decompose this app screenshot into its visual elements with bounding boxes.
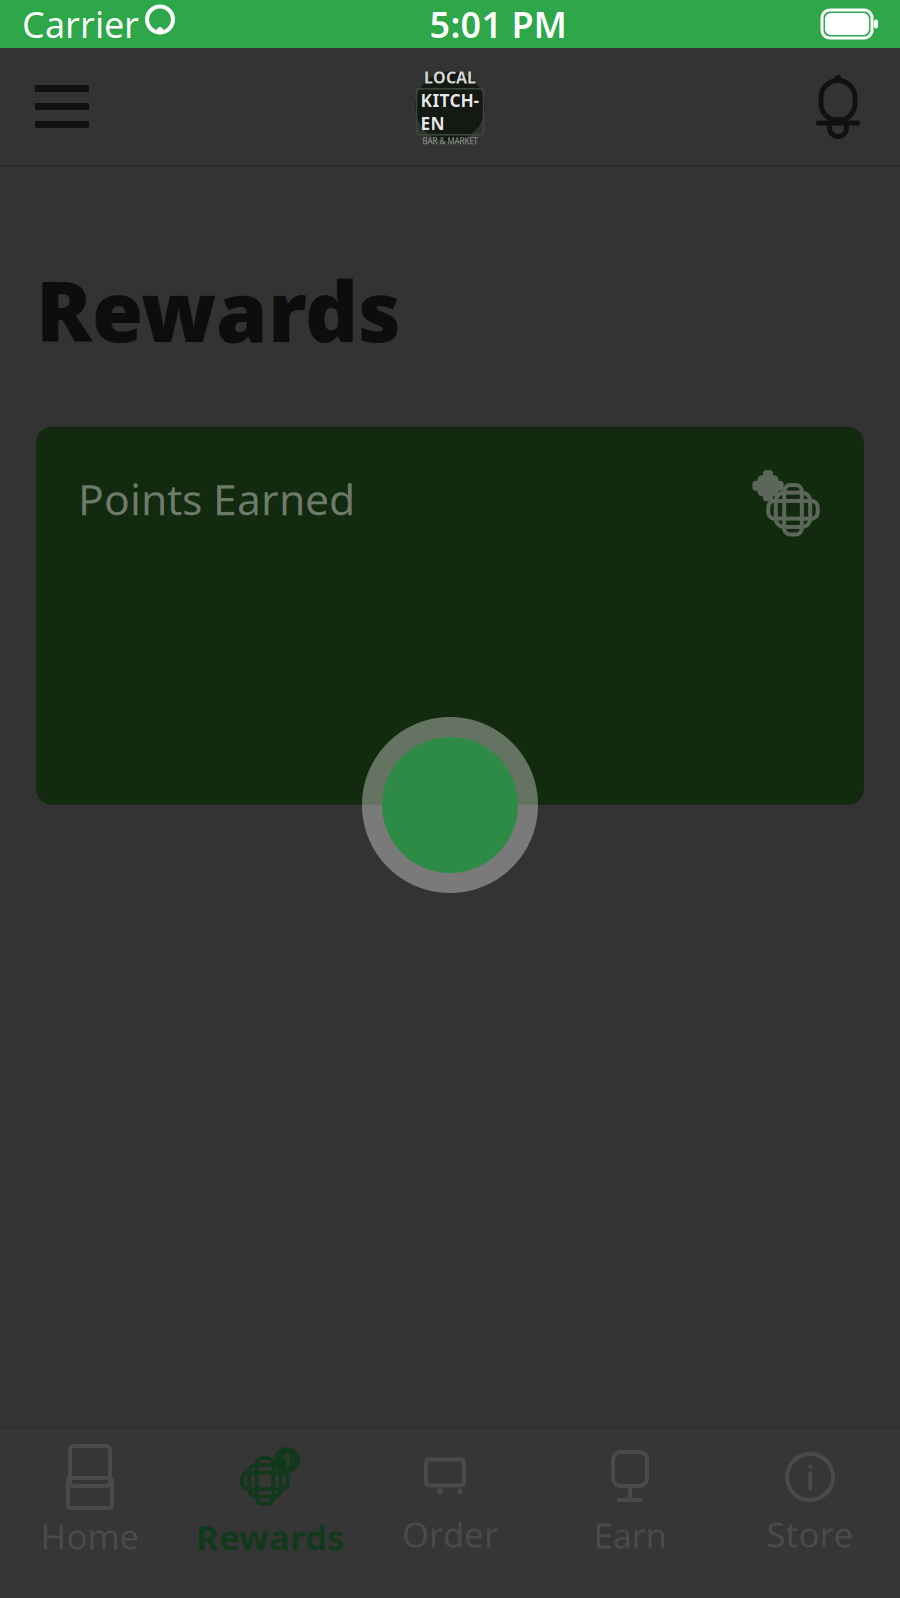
staticText: LOCAL [424, 66, 476, 88]
staticText: Rewards [36, 255, 401, 365]
button[interactable]: Local Kitchen home [395, 58, 505, 154]
staticText: 5:01 PM [429, 0, 566, 48]
staticText: Store [766, 1511, 853, 1557]
staticText: BAR & MARKET [422, 136, 477, 146]
staticText: Earn [593, 1512, 666, 1558]
button[interactable]: Notifications [790, 58, 886, 154]
staticText: i [805, 1454, 814, 1500]
staticText: Home [40, 1513, 139, 1559]
button[interactable]: 1 [180, 1429, 360, 1579]
staticText: Points Earned [78, 470, 355, 527]
staticText: 1 [281, 1448, 292, 1472]
button[interactable]: i [720, 1429, 900, 1579]
button[interactable]: Menu [14, 58, 110, 154]
button[interactable]: Earn [540, 1429, 720, 1579]
staticText: Carrier [22, 0, 139, 48]
button[interactable]: Home [0, 1429, 180, 1579]
staticText: Order [402, 1511, 498, 1557]
button[interactable]: Order [360, 1429, 540, 1579]
staticText: Rewards [196, 1514, 344, 1560]
staticText: KITCHEN [420, 89, 479, 135]
